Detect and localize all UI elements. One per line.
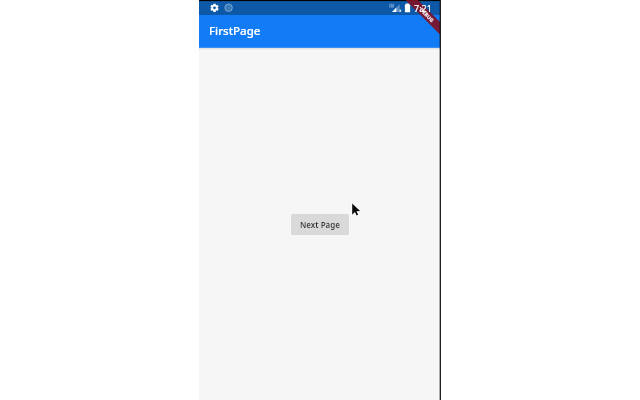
- staticText: 7:21: [414, 2, 432, 14]
- button[interactable]: Settings: [209, 2, 220, 14]
- staticText: Next Page: [300, 219, 340, 230]
- button[interactable]: Screen recording indicator: [224, 3, 234, 13]
- other: Battery full: [404, 3, 412, 14]
- staticText: DEBUG: [418, 6, 435, 24]
- button[interactable]: Next Page: [291, 214, 349, 235]
- other: LTE signal: [388, 2, 401, 14]
- staticText: FirstPage: [209, 23, 261, 39]
